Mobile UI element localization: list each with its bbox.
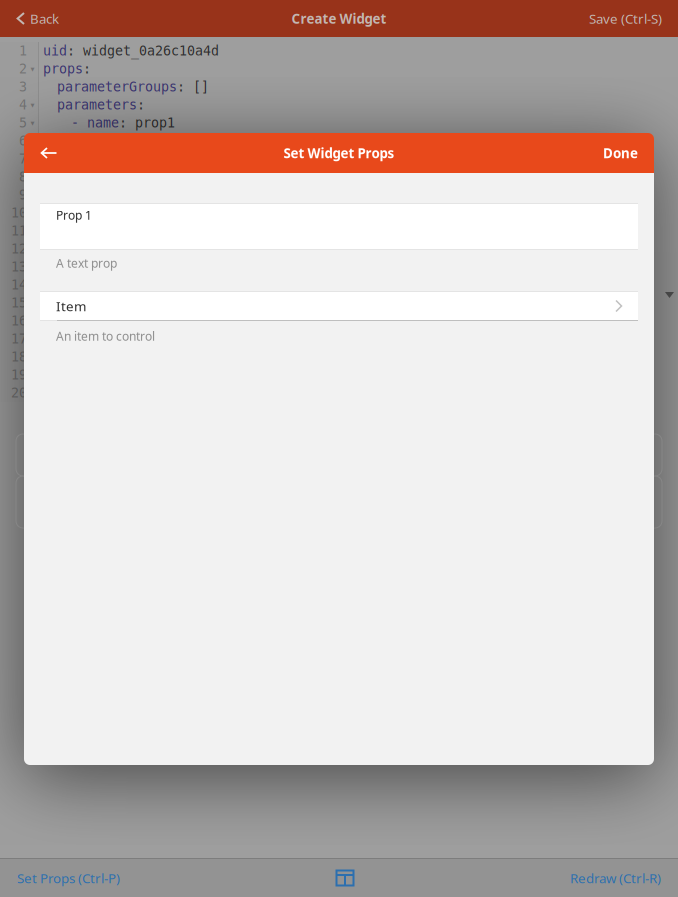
staticText: parameters bbox=[57, 97, 137, 112]
staticText: 20 bbox=[11, 385, 27, 400]
staticText: Back bbox=[30, 10, 59, 27]
staticText: : widget_0a26c10a4d bbox=[67, 43, 219, 58]
staticText: Create Widget bbox=[291, 10, 386, 27]
staticText: : prop1 bbox=[119, 115, 175, 130]
button[interactable]: Set Props (Ctrl-P) bbox=[0, 859, 130, 897]
button[interactable]: Item bbox=[24, 291, 654, 321]
staticText: 11 bbox=[11, 223, 27, 238]
staticText: Item bbox=[56, 297, 86, 315]
staticText: 10 bbox=[11, 205, 27, 220]
staticText: Prop 1 bbox=[56, 207, 92, 223]
staticText: - name bbox=[71, 115, 119, 130]
staticText: 18 bbox=[11, 349, 27, 364]
button[interactable]: Prop 1 bbox=[24, 203, 654, 250]
staticText: ▾ bbox=[30, 100, 34, 110]
staticText: 19 bbox=[11, 367, 27, 382]
staticText: 12 bbox=[11, 241, 27, 256]
staticText: 16 bbox=[11, 313, 27, 328]
staticText: 2 bbox=[19, 61, 27, 76]
staticText: props bbox=[43, 61, 83, 76]
staticText: 17 bbox=[11, 331, 27, 346]
button[interactable]: Layout bbox=[323, 859, 367, 897]
staticText: Save (Ctrl-S) bbox=[589, 10, 662, 27]
staticText: A text prop bbox=[56, 255, 117, 271]
staticText: 15 bbox=[11, 295, 27, 310]
staticText: : bbox=[137, 97, 145, 112]
staticText: 6 bbox=[19, 133, 27, 148]
button[interactable]: Back bbox=[24, 133, 74, 173]
staticText: 14 bbox=[11, 277, 27, 292]
staticText: 7 bbox=[19, 151, 27, 166]
button[interactable]: Done bbox=[593, 133, 654, 173]
staticText: Set Widget Props bbox=[283, 144, 394, 162]
staticText: Set Props (Ctrl-P) bbox=[17, 869, 120, 887]
staticText: 9 bbox=[19, 187, 27, 202]
staticText bbox=[31, 172, 33, 182]
staticText: : [] bbox=[177, 79, 209, 94]
staticText: 4 bbox=[19, 97, 27, 112]
staticText: 5 bbox=[19, 115, 27, 130]
button[interactable]: Back bbox=[0, 0, 67, 37]
staticText: An item to control bbox=[56, 328, 155, 344]
staticText: ▾ bbox=[30, 118, 34, 128]
staticText: Done bbox=[603, 144, 638, 162]
button[interactable]: Save (Ctrl-S) bbox=[581, 0, 678, 37]
button[interactable]: Redraw (Ctrl-R) bbox=[560, 859, 678, 897]
staticText: 13 bbox=[11, 259, 27, 274]
staticText: 3 bbox=[19, 79, 27, 94]
staticText: 1 bbox=[19, 43, 27, 58]
staticText: Redraw (Ctrl-R) bbox=[570, 869, 661, 887]
staticText: : bbox=[83, 61, 91, 76]
staticText: parameterGroups bbox=[57, 79, 177, 94]
staticText: ▾ bbox=[30, 64, 34, 74]
staticText: uid bbox=[43, 43, 67, 58]
staticText: 8 bbox=[19, 169, 27, 184]
